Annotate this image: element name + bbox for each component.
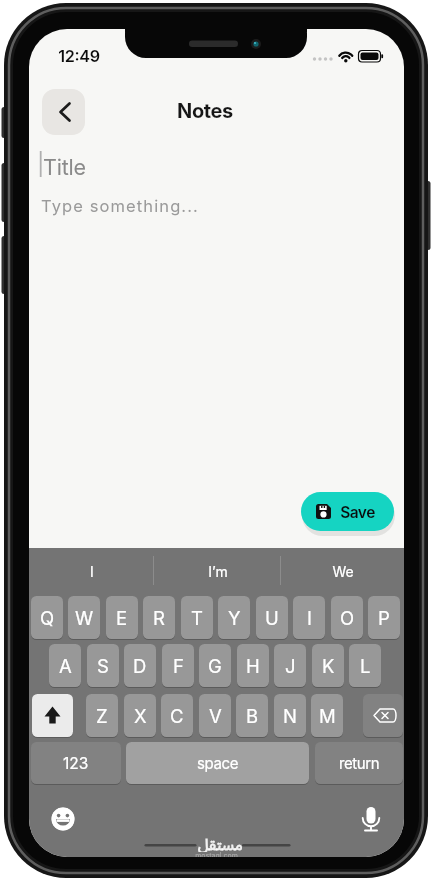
button[interactable]: F bbox=[162, 644, 194, 687]
staticText: space bbox=[197, 754, 238, 772]
button[interactable]: C bbox=[161, 694, 193, 737]
staticText: Notes bbox=[177, 99, 233, 123]
button[interactable]: R bbox=[143, 596, 175, 639]
button[interactable]: J bbox=[274, 644, 306, 687]
button[interactable]: A bbox=[49, 644, 81, 687]
button[interactable]: V bbox=[199, 694, 231, 737]
button[interactable]: I’m bbox=[154, 551, 281, 591]
staticText: R bbox=[153, 607, 165, 629]
staticText: G bbox=[208, 655, 222, 677]
staticText: N bbox=[283, 705, 297, 727]
staticText: B bbox=[246, 705, 259, 727]
button[interactable] bbox=[32, 694, 73, 737]
button[interactable]: Y bbox=[218, 596, 250, 639]
staticText: S bbox=[97, 655, 109, 677]
staticText: A bbox=[59, 655, 72, 677]
staticText: L bbox=[360, 655, 371, 677]
button[interactable]: O bbox=[331, 596, 363, 639]
button[interactable]: M bbox=[311, 694, 343, 737]
staticText: I bbox=[90, 563, 94, 580]
staticText: F bbox=[173, 655, 184, 677]
button[interactable]: H bbox=[237, 644, 269, 687]
staticText: U bbox=[265, 607, 279, 629]
button[interactable]: G bbox=[199, 644, 231, 687]
staticText: J bbox=[285, 655, 296, 677]
button[interactable]: L bbox=[349, 644, 381, 687]
staticText: Type something... bbox=[41, 196, 199, 216]
staticText: V bbox=[209, 705, 222, 727]
staticText: mostaql.com bbox=[195, 851, 238, 857]
staticText: H bbox=[246, 655, 260, 677]
button[interactable]: We bbox=[281, 551, 404, 591]
staticText: P bbox=[378, 607, 390, 629]
staticText: C bbox=[170, 705, 184, 727]
staticText: return bbox=[339, 754, 380, 772]
staticText: I’m bbox=[208, 563, 228, 580]
staticText: D bbox=[133, 655, 147, 677]
button[interactable] bbox=[359, 804, 384, 834]
staticText: Save bbox=[340, 503, 375, 522]
button[interactable]: S bbox=[87, 644, 119, 687]
button[interactable]: P bbox=[368, 596, 400, 639]
staticText: K bbox=[322, 655, 335, 677]
button[interactable]: 123 bbox=[31, 742, 121, 784]
button[interactable]: return bbox=[315, 742, 403, 784]
staticText: Title bbox=[43, 154, 86, 180]
staticText: We bbox=[332, 563, 354, 580]
staticText: X bbox=[134, 705, 147, 727]
button[interactable]: D bbox=[124, 644, 156, 687]
button[interactable]: U bbox=[256, 596, 288, 639]
button[interactable]: Q bbox=[31, 596, 63, 639]
staticText: 123 bbox=[63, 754, 89, 773]
button[interactable]: T bbox=[181, 596, 213, 639]
button[interactable]: space bbox=[126, 742, 309, 784]
button[interactable]: Z bbox=[86, 694, 118, 737]
staticText: E bbox=[116, 607, 128, 629]
button[interactable]: B bbox=[236, 694, 268, 737]
staticText: 12:49 bbox=[58, 46, 100, 66]
staticText: M bbox=[319, 705, 336, 727]
button[interactable]: E bbox=[106, 596, 138, 639]
staticText: Z bbox=[96, 705, 108, 727]
staticText: O bbox=[340, 607, 355, 629]
staticText: I bbox=[307, 607, 312, 629]
button[interactable]: I bbox=[293, 596, 325, 639]
button[interactable]: I bbox=[29, 551, 154, 591]
staticText: W bbox=[75, 607, 94, 629]
staticText: مستقل bbox=[198, 829, 243, 852]
staticText: T bbox=[191, 607, 203, 629]
staticText: Q bbox=[40, 607, 55, 629]
button[interactable]: X bbox=[124, 694, 156, 737]
button[interactable] bbox=[363, 694, 403, 737]
button[interactable]: Save bbox=[301, 492, 394, 531]
staticText: Y bbox=[228, 607, 241, 629]
button[interactable]: W bbox=[68, 596, 100, 639]
button[interactable] bbox=[51, 807, 75, 831]
button[interactable] bbox=[42, 89, 85, 135]
button[interactable]: K bbox=[312, 644, 344, 687]
button[interactable]: N bbox=[274, 694, 306, 737]
